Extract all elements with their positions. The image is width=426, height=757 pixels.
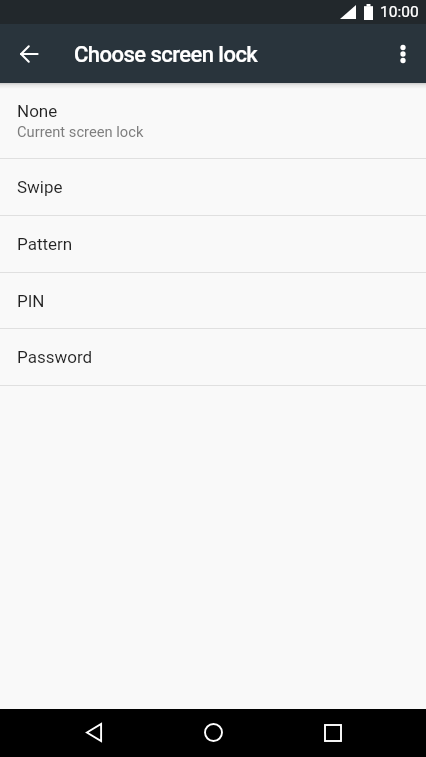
staticText: None [17, 101, 58, 121]
staticText: PIN [17, 291, 45, 311]
staticText: 10:00 [380, 3, 419, 21]
button[interactable]: Recent apps [309, 710, 356, 757]
button[interactable]: More options [385, 36, 421, 72]
staticText: Pattern [17, 234, 73, 254]
staticText: Swipe [17, 177, 63, 197]
button[interactable]: Pattern [0, 216, 426, 272]
button[interactable]: Back [70, 710, 117, 757]
button[interactable]: Swipe [0, 159, 426, 215]
staticText: Password [17, 347, 93, 367]
button[interactable]: PIN [0, 273, 426, 328]
button[interactable]: Navigate up [11, 36, 47, 72]
button[interactable]: None [0, 83, 426, 158]
staticText: Current screen lock [17, 123, 144, 140]
button[interactable]: Home [190, 710, 237, 757]
staticText: Choose screen lock [74, 42, 258, 68]
button[interactable]: Password [0, 329, 426, 385]
